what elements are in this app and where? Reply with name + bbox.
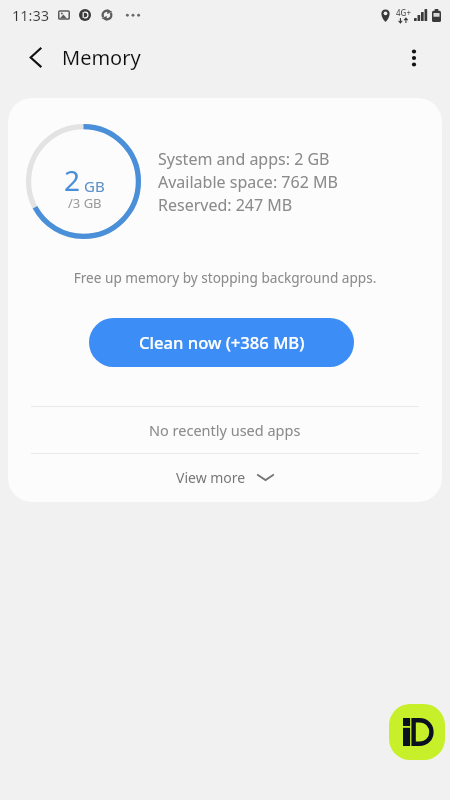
staticText: GB (84, 176, 105, 196)
staticText: Free up memory by stopping background ap… (8, 268, 442, 287)
staticText: No recently used apps (149, 420, 301, 440)
staticText: View more (176, 468, 246, 487)
staticText: 2 (64, 161, 81, 199)
button[interactable]: Clean now (+386 MB) (89, 318, 354, 367)
button[interactable]: iD assistant (389, 704, 445, 760)
staticText: /3 GB (68, 194, 102, 212)
staticText: 11:33 (12, 5, 50, 25)
button[interactable]: More options (394, 38, 434, 78)
staticText: Memory (62, 44, 141, 71)
staticText: System and apps: 2 GB Available space: 7… (158, 148, 338, 215)
staticText: Clean now (+386 MB) (139, 331, 305, 354)
button[interactable]: View more (8, 454, 442, 500)
staticText: 4G+ (396, 7, 411, 18)
button[interactable]: Back (16, 38, 54, 76)
